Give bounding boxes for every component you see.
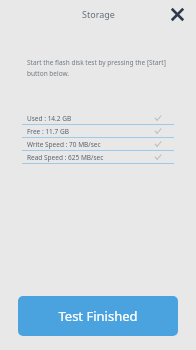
staticText: Test Finished: [58, 307, 138, 325]
button[interactable]: Close: [166, 3, 188, 25]
staticText: Read Speed : 625 MB/sec: [27, 153, 104, 162]
button[interactable]: Test Finished: [18, 296, 178, 336]
staticText: Write Speed : 70 MB/sec: [27, 140, 101, 149]
staticText: Used : 14.2 GB: [27, 114, 72, 123]
button[interactable]: Write Speed : 70 MB/sec: [22, 138, 174, 151]
button[interactable]: Read Speed : 625 MB/sec: [22, 151, 174, 164]
staticText: Start the flash disk test by pressing th…: [27, 58, 179, 78]
button[interactable]: Used : 14.2 GB: [22, 112, 174, 125]
staticText: Free : 11.7 GB: [27, 127, 69, 136]
button[interactable]: Free : 11.7 GB: [22, 125, 174, 138]
staticText: Storage: [82, 8, 115, 20]
